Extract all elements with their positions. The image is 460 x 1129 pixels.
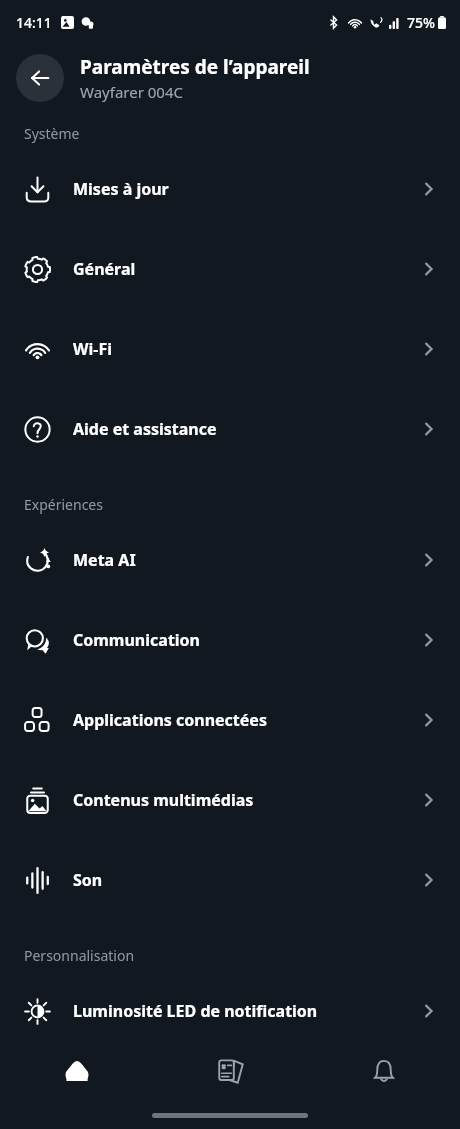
staticText: Communication bbox=[73, 629, 420, 651]
button[interactable]: Communication bbox=[0, 600, 460, 680]
staticText: Meta AI bbox=[73, 549, 420, 571]
button[interactable]: Meta AI bbox=[0, 520, 460, 600]
button[interactable]: Notifications bbox=[307, 1040, 460, 1102]
button[interactable]: Son bbox=[0, 840, 460, 920]
staticText: Aide et assistance bbox=[73, 418, 420, 440]
staticText: Système bbox=[24, 124, 80, 143]
button[interactable]: Luminosité LED de notification bbox=[0, 971, 460, 1051]
button[interactable]: Retour bbox=[16, 54, 64, 102]
button[interactable]: Cartes bbox=[154, 1040, 307, 1102]
staticText: Luminosité LED de notification bbox=[73, 1000, 420, 1022]
button[interactable]: Aide et assistance bbox=[0, 389, 460, 469]
staticText: Wi-Fi bbox=[73, 338, 420, 360]
staticText: 75% bbox=[407, 13, 435, 32]
button[interactable]: Accueil bbox=[0, 1040, 154, 1102]
staticText: Wayfarer 004C bbox=[80, 82, 183, 102]
staticText: 14:11 bbox=[16, 13, 52, 32]
button[interactable]: Wi-Fi bbox=[0, 309, 460, 389]
button[interactable]: Général bbox=[0, 229, 460, 309]
staticText: Expériences bbox=[24, 495, 103, 514]
staticText: Paramètres de l’appareil bbox=[80, 54, 310, 80]
staticText: Général bbox=[73, 258, 420, 280]
staticText: Mises à jour bbox=[73, 178, 420, 200]
staticText: Personnalisation bbox=[24, 946, 135, 965]
staticText: Contenus multimédias bbox=[73, 789, 420, 811]
button[interactable]: Mises à jour bbox=[0, 149, 460, 229]
staticText: Applications connectées bbox=[73, 709, 420, 731]
button[interactable]: Applications connectées bbox=[0, 680, 460, 760]
staticText: Son bbox=[73, 869, 420, 891]
button[interactable]: Contenus multimédias bbox=[0, 760, 460, 840]
